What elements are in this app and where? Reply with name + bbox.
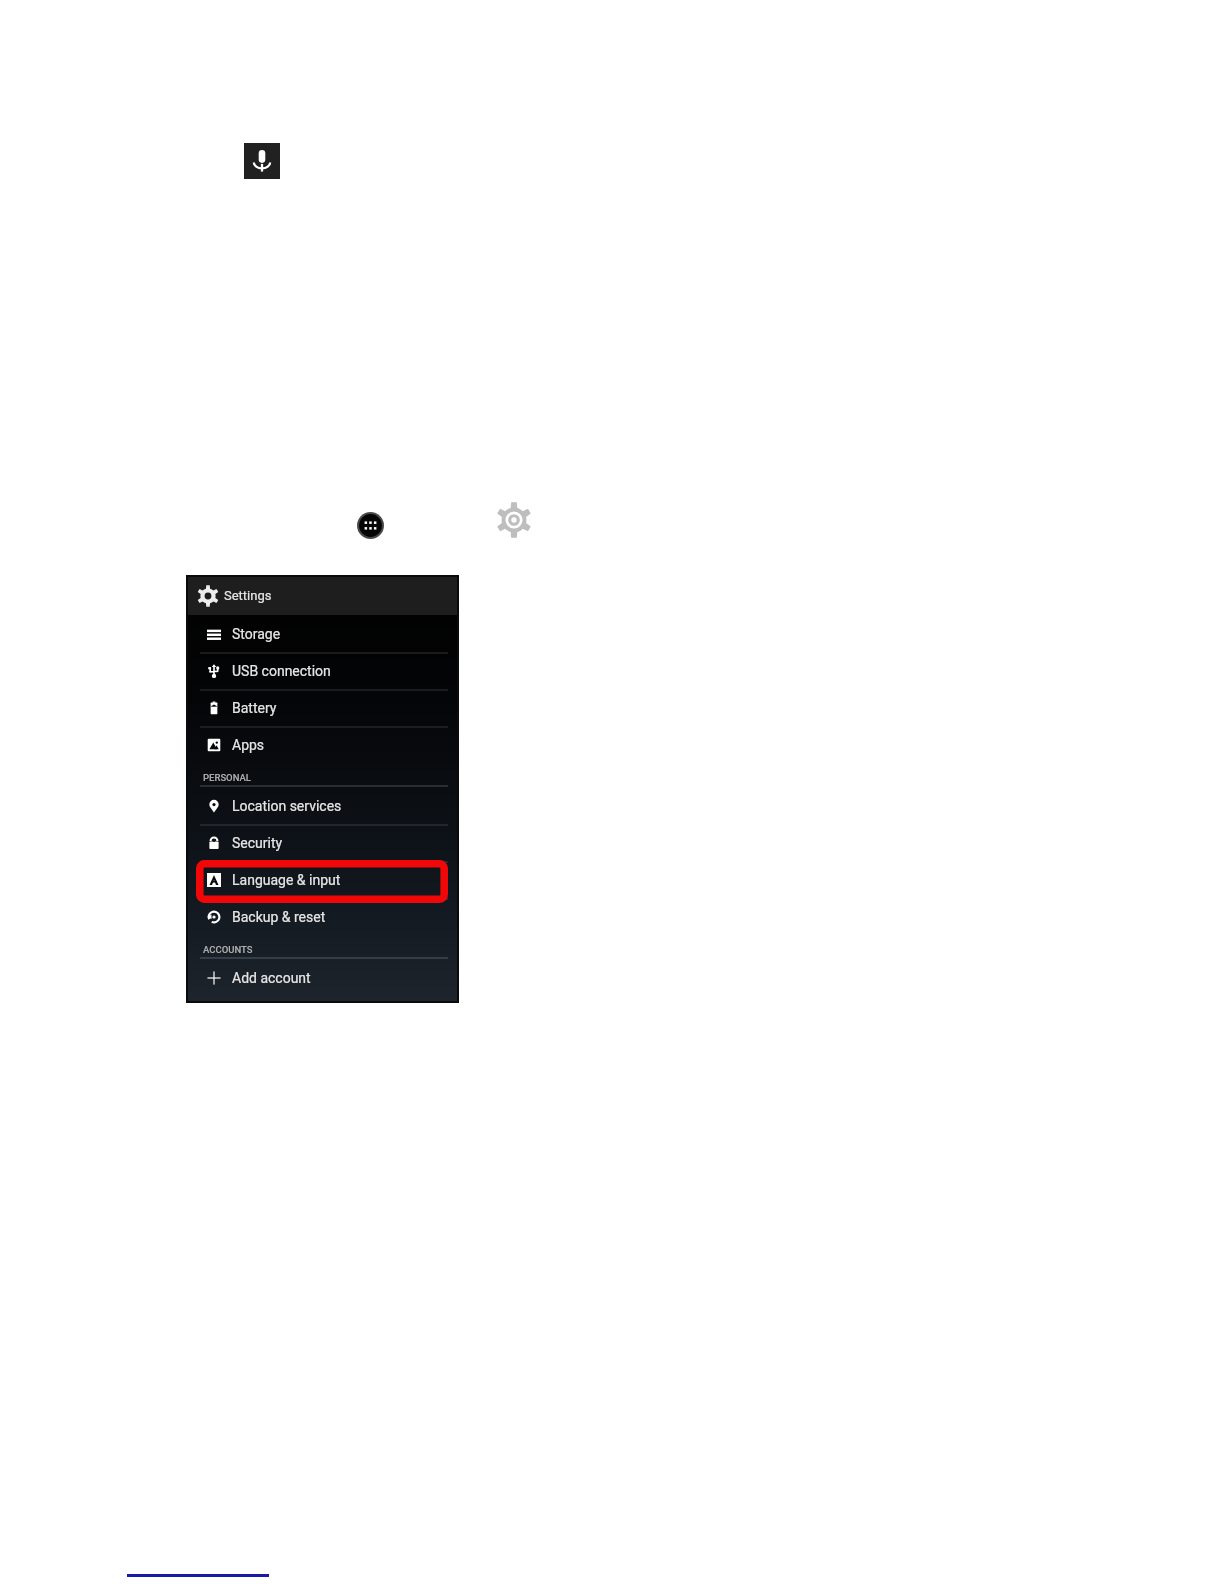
- staticText: USB connection: [232, 663, 331, 679]
- button[interactable]: Settings: [496, 502, 532, 538]
- button[interactable]: Settings: [187, 576, 458, 615]
- button[interactable]: Microphone: [244, 143, 280, 179]
- button[interactable]: Apps: [187, 726, 458, 763]
- staticText: Backup & reset: [232, 909, 326, 925]
- button[interactable]: Location services: [187, 787, 458, 824]
- staticText: Battery: [232, 700, 277, 716]
- staticText: Apps: [232, 737, 265, 753]
- staticText: Security: [232, 835, 283, 851]
- button[interactable]: Backup & reset: [187, 898, 458, 935]
- staticText: Storage: [232, 626, 281, 642]
- button[interactable]: Add account: [187, 959, 458, 999]
- button[interactable]: All apps: [357, 512, 384, 539]
- button[interactable]: Battery: [187, 689, 458, 726]
- staticText: Add account: [232, 970, 311, 986]
- staticText: ACCOUNTS: [203, 944, 253, 955]
- staticText: PERSONAL: [203, 772, 251, 783]
- button[interactable]: USB connection: [187, 652, 458, 689]
- staticText: Settings: [224, 588, 272, 603]
- staticText: Location services: [232, 798, 342, 814]
- button[interactable]: Language & input: [187, 861, 458, 898]
- staticText: Language & input: [232, 872, 341, 888]
- button[interactable]: Security: [187, 824, 458, 861]
- button[interactable]: Storage: [187, 615, 458, 652]
